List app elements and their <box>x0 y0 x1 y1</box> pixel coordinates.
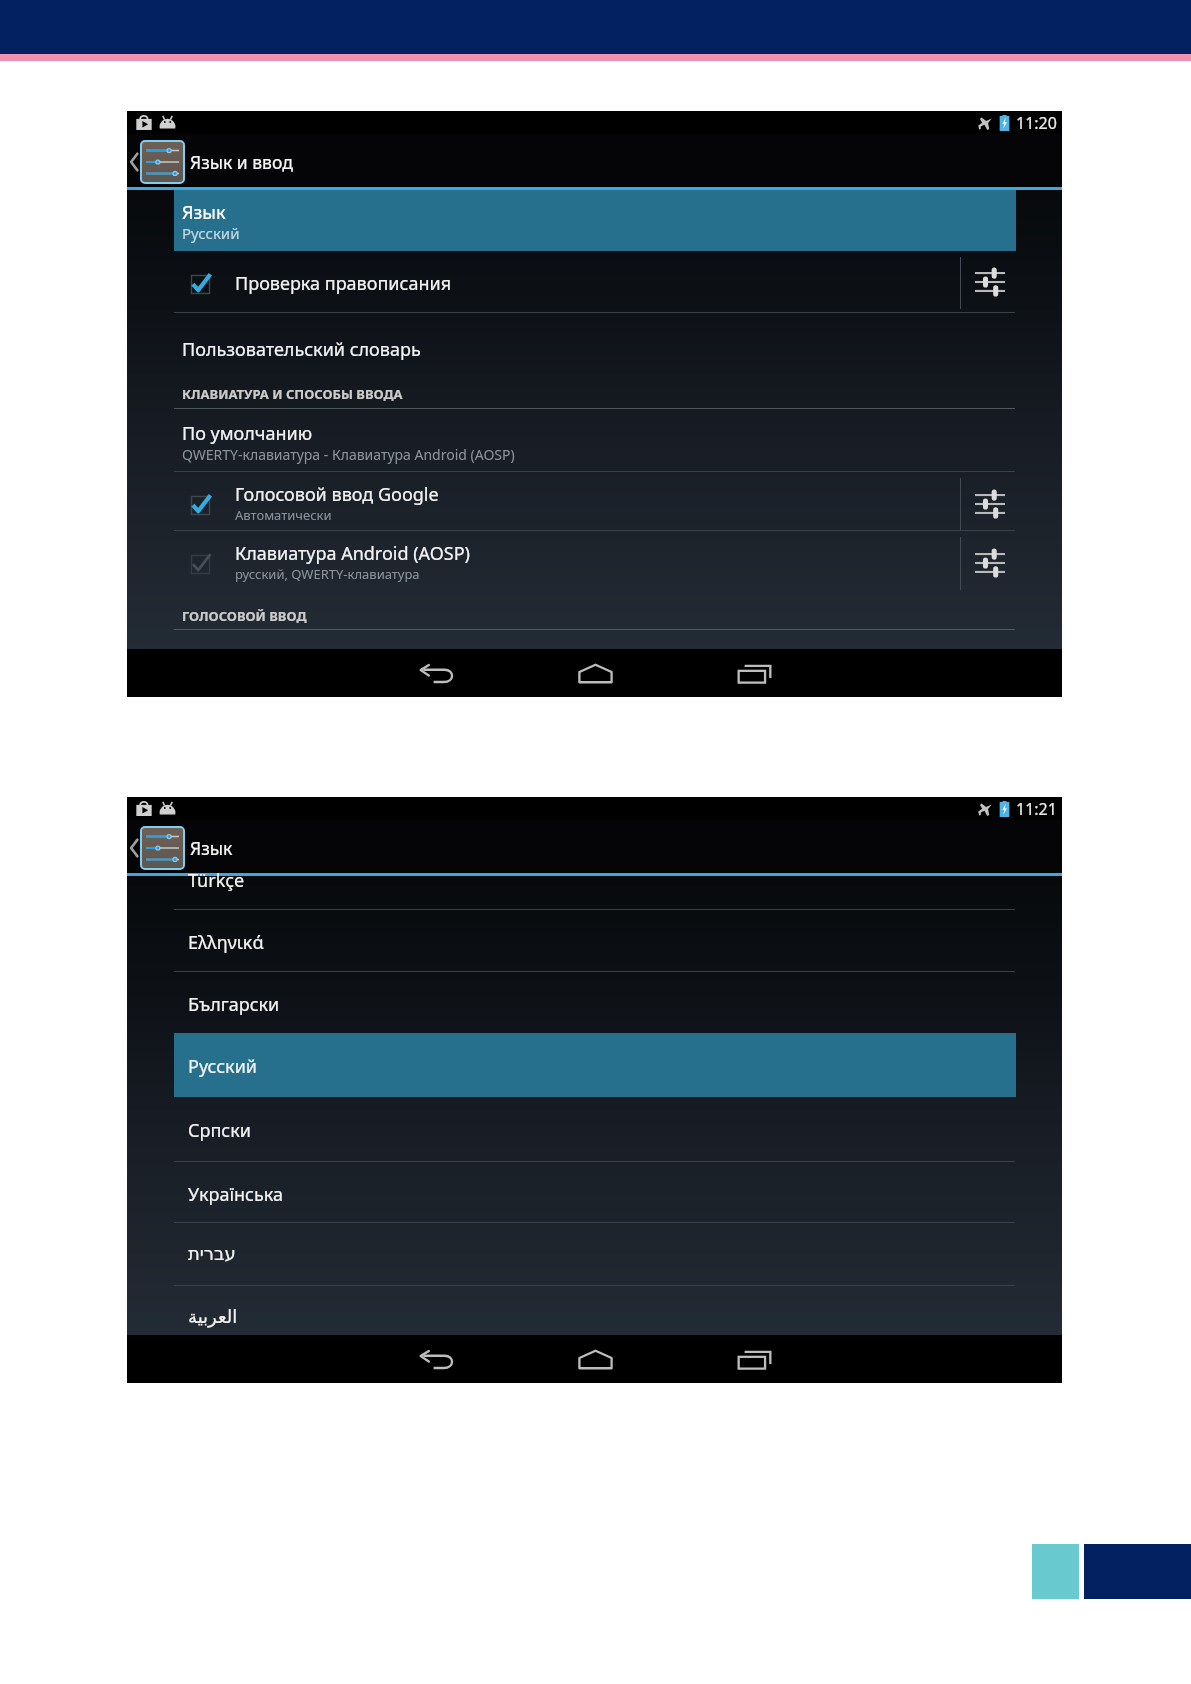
staticText: Русский <box>188 1054 257 1079</box>
button[interactable] <box>127 847 1062 909</box>
button[interactable] <box>127 1222 1062 1285</box>
staticText: Язык и ввод <box>190 150 293 174</box>
button[interactable]: Back <box>127 134 141 190</box>
button[interactable] <box>235 472 959 535</box>
staticText: Türkçe <box>188 868 245 893</box>
staticText: Ελληνικά <box>188 930 264 955</box>
button[interactable]: Back <box>413 649 461 697</box>
button[interactable]: Settings <box>964 251 1015 313</box>
button[interactable] <box>127 1285 1062 1347</box>
staticText: 11:20 <box>1016 112 1057 134</box>
button[interactable]: Back <box>413 1335 461 1383</box>
button[interactable]: Recent apps <box>730 1335 778 1383</box>
button[interactable] <box>127 1033 1062 1097</box>
button[interactable] <box>235 531 959 594</box>
staticText: العربية <box>188 1306 238 1327</box>
button[interactable]: Recent apps <box>730 649 778 697</box>
staticText: Српски <box>188 1118 251 1143</box>
staticText: Язык <box>190 836 233 860</box>
staticText: По умолчанию <box>182 421 313 446</box>
staticText: 11:21 <box>1016 798 1057 820</box>
staticText: QWERTY-клавиатура - Клавиатура Android (… <box>182 445 515 464</box>
staticText: עברית <box>188 1243 236 1264</box>
button[interactable]: Toggle Клавиатура Android (AOSP) <box>182 531 218 594</box>
staticText: КЛАВИАТУРА И СПОСОБЫ ВВОДА <box>182 385 403 403</box>
button[interactable]: Toggle Проверка правописания <box>182 251 218 313</box>
button[interactable] <box>127 909 1062 971</box>
button[interactable]: Back <box>127 820 141 876</box>
button[interactable] <box>235 251 959 313</box>
button[interactable] <box>127 971 1062 1033</box>
button[interactable]: Toggle Голосовой ввод Google <box>182 472 218 535</box>
staticText: Голосовой ввод Google <box>235 482 439 507</box>
staticText: Проверка правописания <box>235 271 452 296</box>
staticText: Пользовательский словарь <box>182 337 421 362</box>
button[interactable]: Язык <box>174 190 1016 251</box>
staticText: Автоматически <box>235 506 332 524</box>
staticText: ГОЛОСОВОЙ ВВОД <box>182 607 307 625</box>
staticText: Клавиатура Android (AOSP) <box>235 541 470 566</box>
staticText: Български <box>188 992 280 1017</box>
staticText: Українська <box>188 1182 284 1207</box>
staticText: Язык <box>182 200 226 225</box>
button[interactable]: Home <box>571 1335 619 1383</box>
staticText: русский, QWERTY-клавиатура <box>235 565 420 583</box>
button[interactable]: Home <box>571 649 619 697</box>
staticText: Русский <box>182 223 240 243</box>
button[interactable]: Settings <box>964 531 1015 594</box>
button[interactable] <box>174 313 1015 377</box>
button[interactable]: Settings <box>964 472 1015 535</box>
button[interactable] <box>127 1161 1062 1222</box>
button[interactable] <box>174 409 1015 471</box>
button[interactable] <box>127 1097 1062 1161</box>
